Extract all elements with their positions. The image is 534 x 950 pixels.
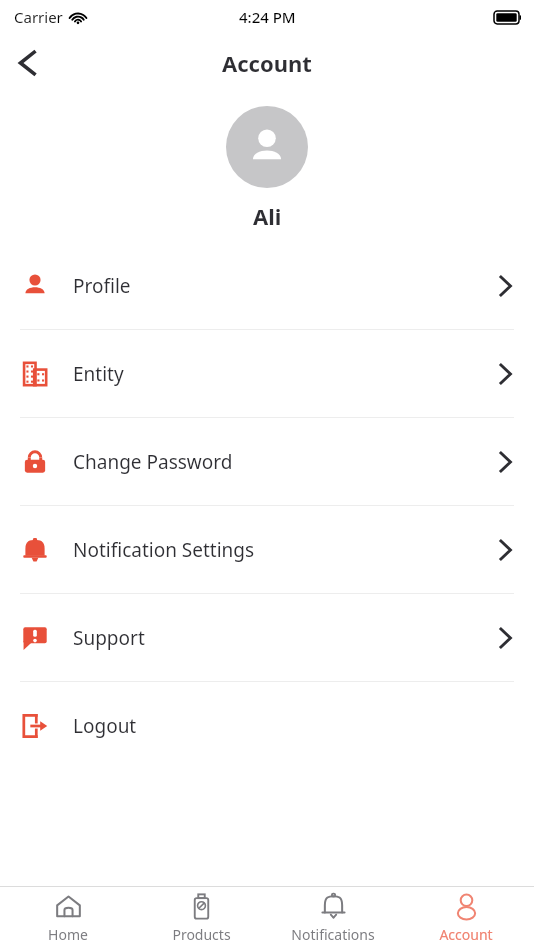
staticText: Account bbox=[222, 48, 312, 78]
button[interactable]: Entity bbox=[0, 330, 534, 417]
button[interactable]: Account bbox=[401, 887, 531, 950]
button[interactable]: Logout bbox=[0, 682, 534, 769]
staticText: Ali bbox=[253, 201, 282, 231]
button[interactable]: Products bbox=[136, 887, 266, 950]
staticText: Entity bbox=[73, 361, 124, 387]
button[interactable]: Back bbox=[0, 36, 54, 90]
staticText: Home bbox=[48, 925, 88, 944]
button[interactable]: Notification Settings bbox=[0, 506, 534, 593]
button[interactable]: Change Password bbox=[0, 418, 534, 505]
staticText: Notifications bbox=[291, 925, 375, 944]
staticText: Logout bbox=[73, 713, 137, 739]
button[interactable]: Home bbox=[3, 887, 133, 950]
staticText: Notification Settings bbox=[73, 537, 255, 563]
button[interactable]: Notifications bbox=[268, 887, 398, 950]
staticText: Support bbox=[73, 625, 145, 651]
staticText: Change Password bbox=[73, 449, 233, 475]
staticText: Products bbox=[172, 925, 231, 944]
staticText: Account bbox=[439, 925, 493, 944]
button[interactable]: Profile bbox=[0, 242, 534, 329]
staticText: Carrier bbox=[14, 7, 63, 27]
staticText: 4:24 PM bbox=[239, 7, 296, 27]
staticText: Profile bbox=[73, 273, 131, 299]
button[interactable]: Support bbox=[0, 594, 534, 681]
